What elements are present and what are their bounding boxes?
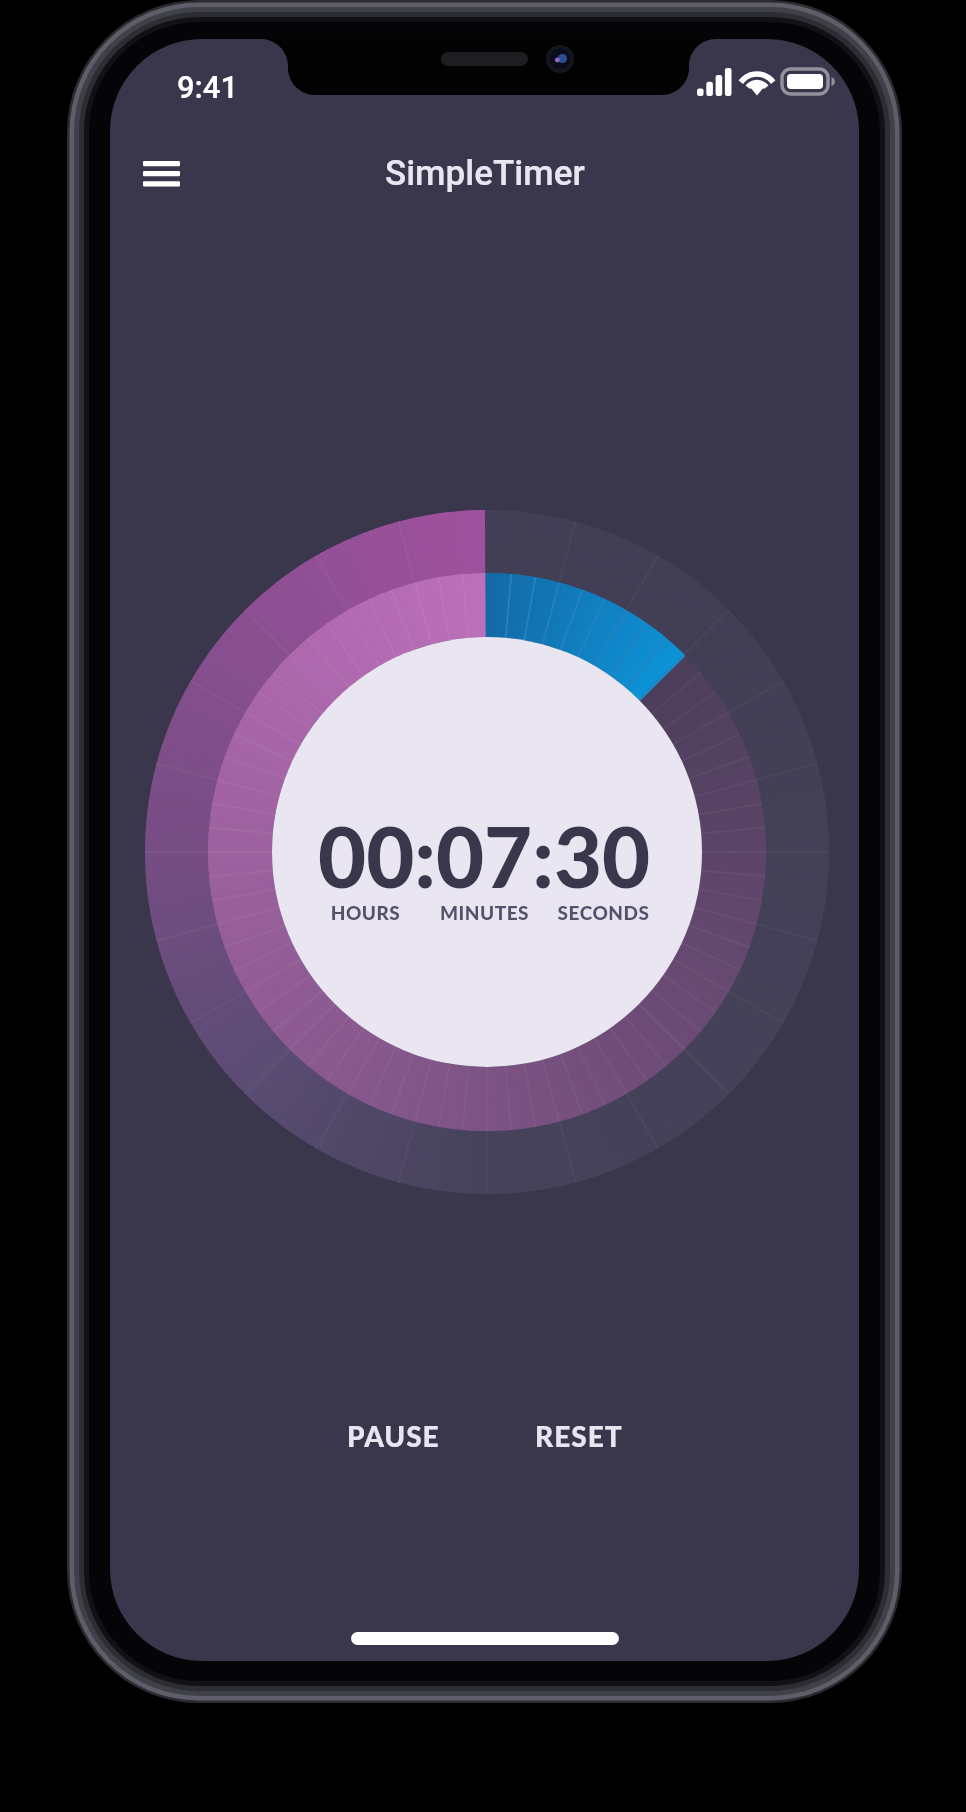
staticText: PAUSE	[347, 1419, 440, 1453]
staticText: 00:07:30	[318, 806, 651, 906]
staticText: SimpleTimer	[385, 153, 585, 194]
staticText: MINUTES	[425, 901, 544, 924]
staticText: 9:41	[177, 69, 239, 105]
staticText: HOURS	[306, 901, 425, 924]
button[interactable]: PAUSE	[331, 1405, 456, 1467]
staticText: SECONDS	[544, 901, 663, 924]
button[interactable]: RESET	[519, 1405, 639, 1467]
staticText: RESET	[535, 1419, 623, 1453]
button[interactable]: Open navigation menu	[131, 143, 195, 203]
